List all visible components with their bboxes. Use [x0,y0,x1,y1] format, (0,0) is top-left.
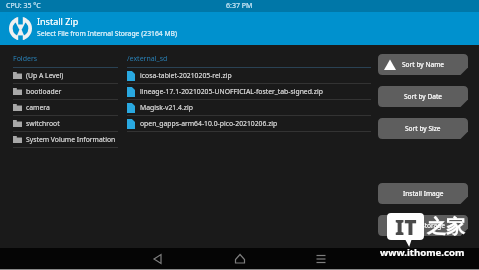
staticText: icosa-tablet-20210205-rel.zip [140,71,232,80]
staticText: Magisk-v21.4.zip [140,103,193,112]
staticText: 6:37 PM [226,1,253,11]
staticText: Install Zip [37,15,79,27]
staticText: Sort by Date [404,92,443,101]
button[interactable]: Sort by Size [378,118,468,139]
staticText: IT [395,213,417,240]
staticText: Install Image [403,189,444,198]
button[interactable]: Recent apps [310,248,332,270]
button[interactable]: System Volume Information [13,132,119,148]
staticText: CPU: 35 °C [6,1,41,11]
button[interactable]: Back [147,248,169,270]
staticText: Select File from Internal Storage (23164… [37,29,178,38]
staticText: Sort by Name [402,60,445,69]
staticText: 之家 [427,215,465,239]
staticText: Select Storage [401,221,446,230]
button[interactable]: Sort by Name [378,54,468,75]
button[interactable]: lineage-17.1-20210205-UNOFFICIAL-foster_… [127,84,371,100]
staticText: System Volume Information [26,135,116,144]
button[interactable]: switchroot [13,116,119,132]
button[interactable]: icosa-tablet-20210205-rel.zip [127,68,371,84]
staticText: www.ithome.com [380,246,465,259]
button[interactable]: Sort by Date [378,86,468,107]
button[interactable]: (Up A Level) [13,68,119,84]
staticText: switchroot [26,119,60,128]
staticText: Sort by Size [405,124,441,133]
staticText: bootloader [26,87,62,96]
button[interactable]: Home [229,248,251,270]
staticText: lineage-17.1-20210205-UNOFFICIAL-foster_… [140,87,323,96]
staticText: Folders [13,54,38,64]
button[interactable]: bootloader [13,84,119,100]
button[interactable]: open_gapps-arm64-10.0-pico-20210206.zip [127,116,371,132]
button[interactable]: Select Storage [378,215,468,236]
button[interactable]: Magisk-v21.4.zip [127,100,371,116]
staticText: /external_sd [127,54,168,64]
staticText: open_gapps-arm64-10.0-pico-20210206.zip [140,119,278,128]
button[interactable]: camera [13,100,119,116]
button[interactable]: Install Image [378,183,468,204]
staticText: (Up A Level) [26,71,64,80]
staticText: camera [26,103,50,112]
